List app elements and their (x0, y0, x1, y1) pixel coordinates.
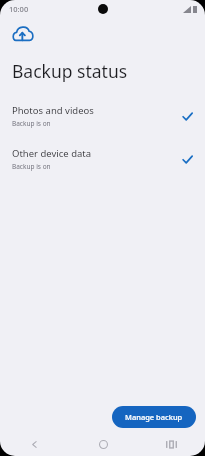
button[interactable]: Photos and videos (0, 102, 205, 130)
button[interactable]: Other device data (0, 145, 205, 173)
button[interactable]: Home (69, 432, 137, 456)
staticText: Backup is on (12, 162, 51, 171)
staticText: Backup is on (12, 119, 51, 128)
staticText: Other device data (12, 147, 92, 160)
other: Backup enabled (179, 151, 195, 167)
staticText: Photos and videos (12, 104, 94, 117)
staticText: 10:00 (9, 4, 29, 14)
button[interactable]: Back (0, 432, 69, 456)
button[interactable]: Manage backup (112, 406, 196, 428)
staticText: Backup status (12, 59, 128, 83)
other: Backup enabled (179, 108, 195, 124)
button[interactable]: Recent apps (137, 432, 205, 456)
staticText: Manage backup (125, 412, 183, 422)
